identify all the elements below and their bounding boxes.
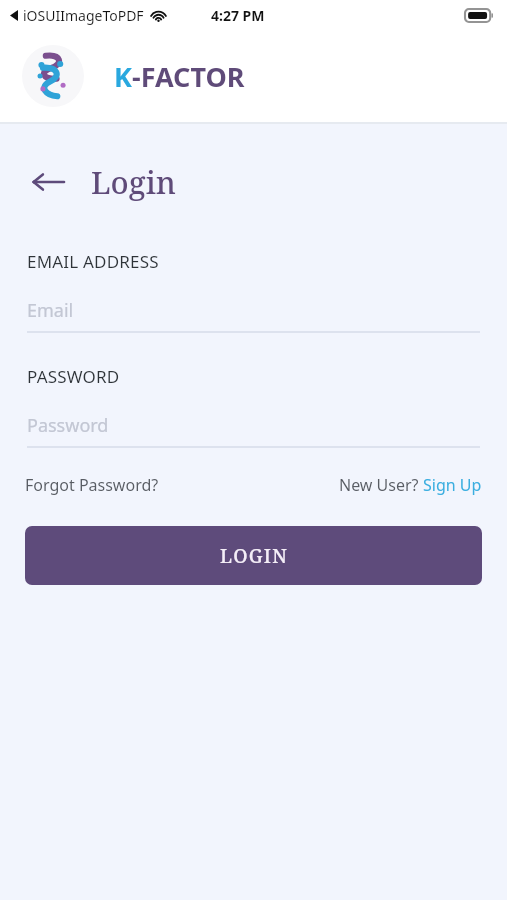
- button[interactable]: Forgot Password?: [25, 470, 159, 500]
- staticText: PASSWORD: [27, 365, 120, 388]
- staticText: LOGIN: [220, 543, 288, 569]
- staticText: -FACTOR: [132, 58, 245, 95]
- button[interactable]: LOGIN: [25, 526, 482, 585]
- staticText: EMAIL ADDRESS: [27, 250, 159, 273]
- button[interactable]: Back: [26, 160, 70, 204]
- button[interactable]: New User?: [339, 470, 482, 500]
- staticText: K: [114, 58, 132, 95]
- staticText: 4:27 PM: [211, 6, 265, 25]
- button[interactable]: Email: [27, 295, 480, 325]
- staticText: Login: [91, 161, 177, 203]
- staticText: New User?: [339, 474, 423, 496]
- staticText: iOSUIImageToPDF: [23, 6, 144, 25]
- staticText: Email: [27, 298, 74, 323]
- staticText: Password: [27, 413, 109, 438]
- staticText: Sign Up: [423, 474, 482, 496]
- staticText: Forgot Password?: [25, 474, 159, 496]
- button[interactable]: Password: [27, 410, 480, 440]
